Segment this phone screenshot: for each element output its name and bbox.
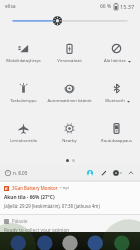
button[interactable]: n. 8.05 [5, 170, 28, 176]
button[interactable]: Bluetooth [93, 73, 140, 113]
button[interactable]: Lentokonetila [0, 113, 46, 153]
button[interactable]: Settings [113, 170, 122, 176]
staticText: Jäljellä: 29:29 (keskimäärin), 07:38 (ja… [4, 203, 100, 209]
button[interactable]: Virransäästö [46, 33, 93, 73]
button[interactable]: Älä häiritse [93, 33, 140, 73]
staticText: Virransäästö [57, 58, 82, 64]
button[interactable] [0, 12, 140, 29]
staticText: Palaute [12, 218, 28, 224]
button[interactable]: User [85, 168, 94, 177]
staticText: elisa [5, 3, 16, 10]
button[interactable]: Palaute [0, 215, 140, 238]
button[interactable]: Taskulamppu [0, 73, 46, 113]
staticText: 15.37 [120, 3, 135, 10]
staticText: Bluetooth [105, 98, 125, 104]
staticText: Taskulamppu [10, 98, 37, 104]
staticText: Ruutukaappaus [101, 138, 132, 144]
staticText: 66 % [100, 3, 112, 10]
button[interactable]: Edit tiles [99, 168, 108, 177]
staticText: Lentokonetila [10, 138, 37, 144]
staticText: Ready to collect your opinion [4, 227, 70, 234]
staticText: Mobiilidatayhteys [6, 58, 41, 64]
staticText: • nyt [60, 185, 69, 191]
staticText: Automaattinen kääntö [47, 98, 92, 104]
staticText: 3Gan Battery Monitor [12, 185, 58, 191]
button[interactable]: Automaattinen kääntö [46, 73, 93, 113]
staticText: n. 8.05 [13, 170, 28, 176]
button[interactable]: Mobiilidatayhteys [0, 33, 46, 73]
button[interactable]: Nearby [46, 113, 93, 153]
button[interactable]: 3Gan Battery Monitor [0, 182, 140, 214]
button[interactable]: Ruutukaappaus [93, 113, 140, 153]
staticText: Älä häiritse [104, 58, 126, 64]
staticText: Akun tila - 66% (27°C) [4, 194, 55, 201]
button[interactable]: Collapse [126, 168, 135, 177]
staticText: Nearby [62, 138, 77, 144]
